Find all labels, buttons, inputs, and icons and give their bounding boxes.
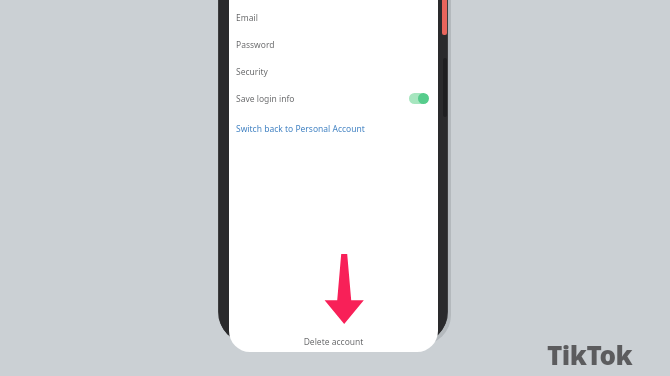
button[interactable]: TikTok xyxy=(545,336,635,373)
button[interactable]: Security xyxy=(229,58,438,85)
staticText: Security xyxy=(236,66,268,78)
staticText: Password xyxy=(236,39,275,51)
button[interactable]: Switch back to Personal Account xyxy=(229,116,438,142)
staticText: Save login info xyxy=(236,93,295,105)
other: Save login info toggle, on xyxy=(409,93,429,104)
staticText: Email xyxy=(236,12,258,24)
button[interactable]: Password xyxy=(229,31,438,58)
staticText: Delete account xyxy=(229,336,438,348)
staticText: Switch back to Personal Account xyxy=(236,123,365,135)
button[interactable]: Save login info xyxy=(229,85,438,112)
button[interactable]: Delete account xyxy=(229,332,438,352)
button[interactable]: Email xyxy=(229,4,438,31)
staticText: TikTok xyxy=(547,337,633,372)
